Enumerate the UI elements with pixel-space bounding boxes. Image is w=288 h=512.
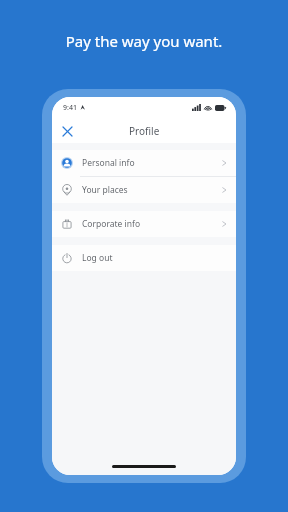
staticText: Corporate info xyxy=(82,218,222,230)
staticText: Log out xyxy=(82,252,227,264)
staticText: Pay the way you want. xyxy=(0,31,288,51)
button[interactable]: Personal info xyxy=(52,150,236,176)
staticText: Your places xyxy=(82,184,222,196)
button[interactable]: Your places xyxy=(52,177,236,203)
button[interactable]: Log out xyxy=(52,245,236,271)
staticText: 9:41 xyxy=(63,103,77,113)
button[interactable]: Close xyxy=(57,121,77,141)
button[interactable]: Corporate info xyxy=(52,211,236,237)
staticText: Personal info xyxy=(82,157,222,169)
staticText: Profile xyxy=(129,124,160,138)
